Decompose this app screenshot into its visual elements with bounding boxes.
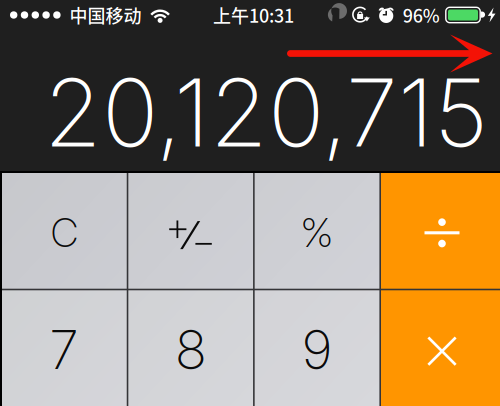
staticText: 7: [49, 317, 79, 382]
staticText: %: [300, 208, 333, 257]
button[interactable]: 8: [128, 290, 253, 406]
button[interactable]: %: [255, 173, 379, 289]
button[interactable]: Multiply: [381, 290, 500, 406]
button[interactable]: Divide: [381, 173, 500, 289]
button[interactable]: Plus Minus: [128, 173, 253, 289]
staticText: 9: [301, 317, 332, 382]
button[interactable]: 9: [255, 290, 379, 406]
button[interactable]: C: [2, 173, 127, 289]
staticText: 96%: [403, 2, 440, 28]
staticText: 8: [175, 317, 207, 382]
staticText: 中国移动: [70, 2, 142, 28]
staticText: 20,120,715: [44, 56, 488, 169]
button[interactable]: 7: [2, 290, 127, 406]
staticText: C: [51, 208, 78, 257]
staticText: 上午10:31: [213, 2, 294, 28]
